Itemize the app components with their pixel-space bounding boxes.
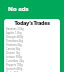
staticText: Peppers 700g <box>6 63 23 67</box>
button[interactable]: Potatoes 6kg <box>4 43 60 47</box>
staticText: Bananas 2.5kg <box>6 27 24 31</box>
staticText: Carrots 3kg <box>6 47 21 51</box>
staticText: Spinach 400g <box>6 67 23 71</box>
button[interactable]: No ads <box>0 0 64 19</box>
staticText: Tomatoes 4kg <box>6 39 24 43</box>
button[interactable]: Bananas 2.5kg <box>4 27 60 31</box>
staticText: Cucumber 2kg <box>6 59 24 63</box>
staticText: Today's Trades <box>4 19 60 26</box>
button[interactable]: Spinach 400g <box>4 67 60 71</box>
button[interactable]: Cucumber 2kg <box>4 59 60 63</box>
button[interactable]: Oranges 800g <box>4 35 60 39</box>
button[interactable]: Carrots 3kg <box>4 47 60 51</box>
button[interactable]: Apples 1.2kg <box>4 31 60 35</box>
staticText: Lettuce 500g <box>6 55 22 59</box>
staticText: Onions 1kg <box>6 51 20 55</box>
button[interactable]: Lettuce 500g <box>4 55 60 59</box>
staticText: No ads <box>8 5 29 13</box>
staticText: Apples 1.2kg <box>6 31 22 35</box>
staticText: Potatoes 6kg <box>6 43 22 47</box>
staticText: Oranges 800g <box>6 35 24 39</box>
button[interactable]: Tomatoes 4kg <box>4 39 60 43</box>
staticText: Garlic 250g <box>6 71 20 72</box>
button[interactable]: Garlic 250g <box>4 71 60 72</box>
button[interactable]: Onions 1kg <box>4 51 60 55</box>
button[interactable]: Peppers 700g <box>4 63 60 67</box>
